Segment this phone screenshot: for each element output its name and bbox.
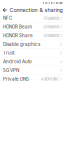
staticText: NFC bbox=[3, 15, 12, 21]
staticText: Disabled bbox=[43, 33, 58, 38]
button[interactable]: 5G VPN bbox=[0, 66, 65, 75]
button[interactable]: HONOR Share bbox=[0, 31, 65, 40]
staticText: Disable graphics bbox=[3, 41, 40, 47]
button[interactable]: Private DNS bbox=[0, 75, 65, 83]
staticText: Disabled bbox=[43, 16, 58, 21]
staticText: Disabled bbox=[43, 24, 58, 29]
staticText: Trust bbox=[3, 50, 14, 56]
staticText: HONOR Share bbox=[3, 33, 33, 38]
staticText: Android Auto bbox=[3, 59, 32, 64]
staticText: 5G VPN bbox=[3, 68, 19, 73]
button[interactable]: HONOR Beam bbox=[0, 23, 65, 31]
staticText: Automatic bbox=[40, 77, 58, 81]
button[interactable]: Back bbox=[0, 6, 9, 14]
staticText: Private DNS bbox=[3, 76, 29, 82]
button[interactable]: Disable graphics bbox=[0, 40, 65, 49]
button[interactable]: Trust bbox=[0, 49, 65, 57]
button[interactable]: Android Auto bbox=[0, 57, 65, 66]
staticText: Connection & sharing bbox=[9, 7, 62, 13]
staticText: HONOR Beam bbox=[3, 24, 32, 30]
button[interactable]: NFC bbox=[0, 14, 65, 23]
